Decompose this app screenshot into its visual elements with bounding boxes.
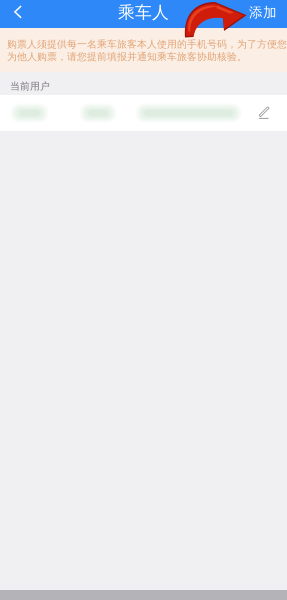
button[interactable] xyxy=(0,95,287,131)
staticText: 购票人须提供每一名乘车旅客本人使用的手机号码，为了方便您 xyxy=(7,38,287,50)
button[interactable]: 返回 xyxy=(0,0,36,28)
staticText: 当前用户 xyxy=(10,80,50,92)
staticText: 乘车人 xyxy=(118,2,169,23)
staticText: 添加 xyxy=(249,4,277,21)
button[interactable]: 添加 xyxy=(239,0,287,28)
staticText: 为他人购票，请您提前填报并通知乘车旅客协助核验。 xyxy=(7,50,247,63)
